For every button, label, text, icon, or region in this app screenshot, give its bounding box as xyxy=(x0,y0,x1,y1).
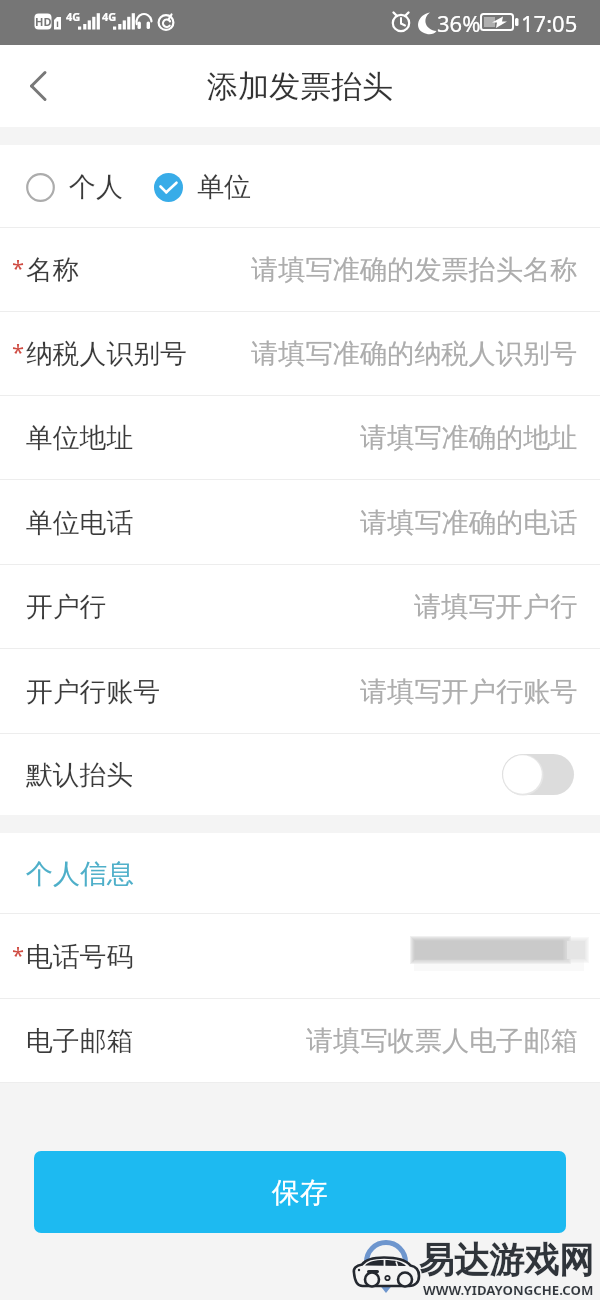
button[interactable]: * xyxy=(0,914,600,999)
staticText: 请填写开户行 xyxy=(414,590,578,624)
staticText: 请填写准确的电话 xyxy=(360,506,578,540)
button[interactable]: 保存 xyxy=(34,1151,566,1233)
staticText: 单位地址 xyxy=(26,421,134,455)
staticText: 4G xyxy=(66,9,81,24)
staticText: 请填写准确的地址 xyxy=(360,421,578,455)
staticText: 17:05 xyxy=(521,8,578,38)
staticText: 36% xyxy=(437,8,481,38)
staticText: 易达游戏网 xyxy=(419,1238,594,1282)
staticText: 名称 xyxy=(26,253,80,287)
staticText: * xyxy=(12,939,25,969)
staticText: 请填写准确的发票抬头名称 xyxy=(251,253,578,287)
staticText: 4G xyxy=(102,9,117,24)
button[interactable]: 个人 xyxy=(26,170,123,204)
staticText: 请填写收票人电子邮箱 xyxy=(306,1024,578,1058)
button[interactable]: 单位地址 xyxy=(0,396,600,480)
staticText: HD xyxy=(35,14,52,29)
staticText: 单位电话 xyxy=(26,506,134,540)
staticText: 开户行账号 xyxy=(26,675,160,709)
staticText: 添加发票抬头 xyxy=(207,67,393,106)
staticText: 电话号码 xyxy=(26,940,134,974)
button[interactable]: Default title toggle xyxy=(502,754,574,795)
button[interactable]: * xyxy=(0,312,600,396)
staticText: WWW.YIDAYONGCHE.COM xyxy=(423,1281,594,1299)
staticText: 保存 xyxy=(272,1175,328,1210)
staticText: * xyxy=(12,336,25,366)
button[interactable]: 电子邮箱 xyxy=(0,999,600,1083)
staticText: * xyxy=(12,252,25,282)
staticText: 请填写开户行账号 xyxy=(360,675,578,709)
staticText: 纳税人识别号 xyxy=(26,337,187,371)
staticText: 个人信息 xyxy=(26,857,134,891)
button[interactable]: 开户行 xyxy=(0,565,600,649)
staticText: 单位 xyxy=(197,170,251,204)
staticText: 请填写准确的纳税人识别号 xyxy=(251,337,578,371)
button[interactable]: Back xyxy=(0,55,62,117)
button[interactable]: 单位 xyxy=(154,170,251,204)
staticText: 默认抬头 xyxy=(26,758,134,792)
button[interactable]: 单位电话 xyxy=(0,480,600,565)
staticText: 个人 xyxy=(69,170,123,204)
staticText: 电子邮箱 xyxy=(26,1024,134,1058)
staticText: 开户行 xyxy=(26,590,107,624)
button[interactable]: * xyxy=(0,228,600,312)
button[interactable]: 开户行账号 xyxy=(0,649,600,734)
